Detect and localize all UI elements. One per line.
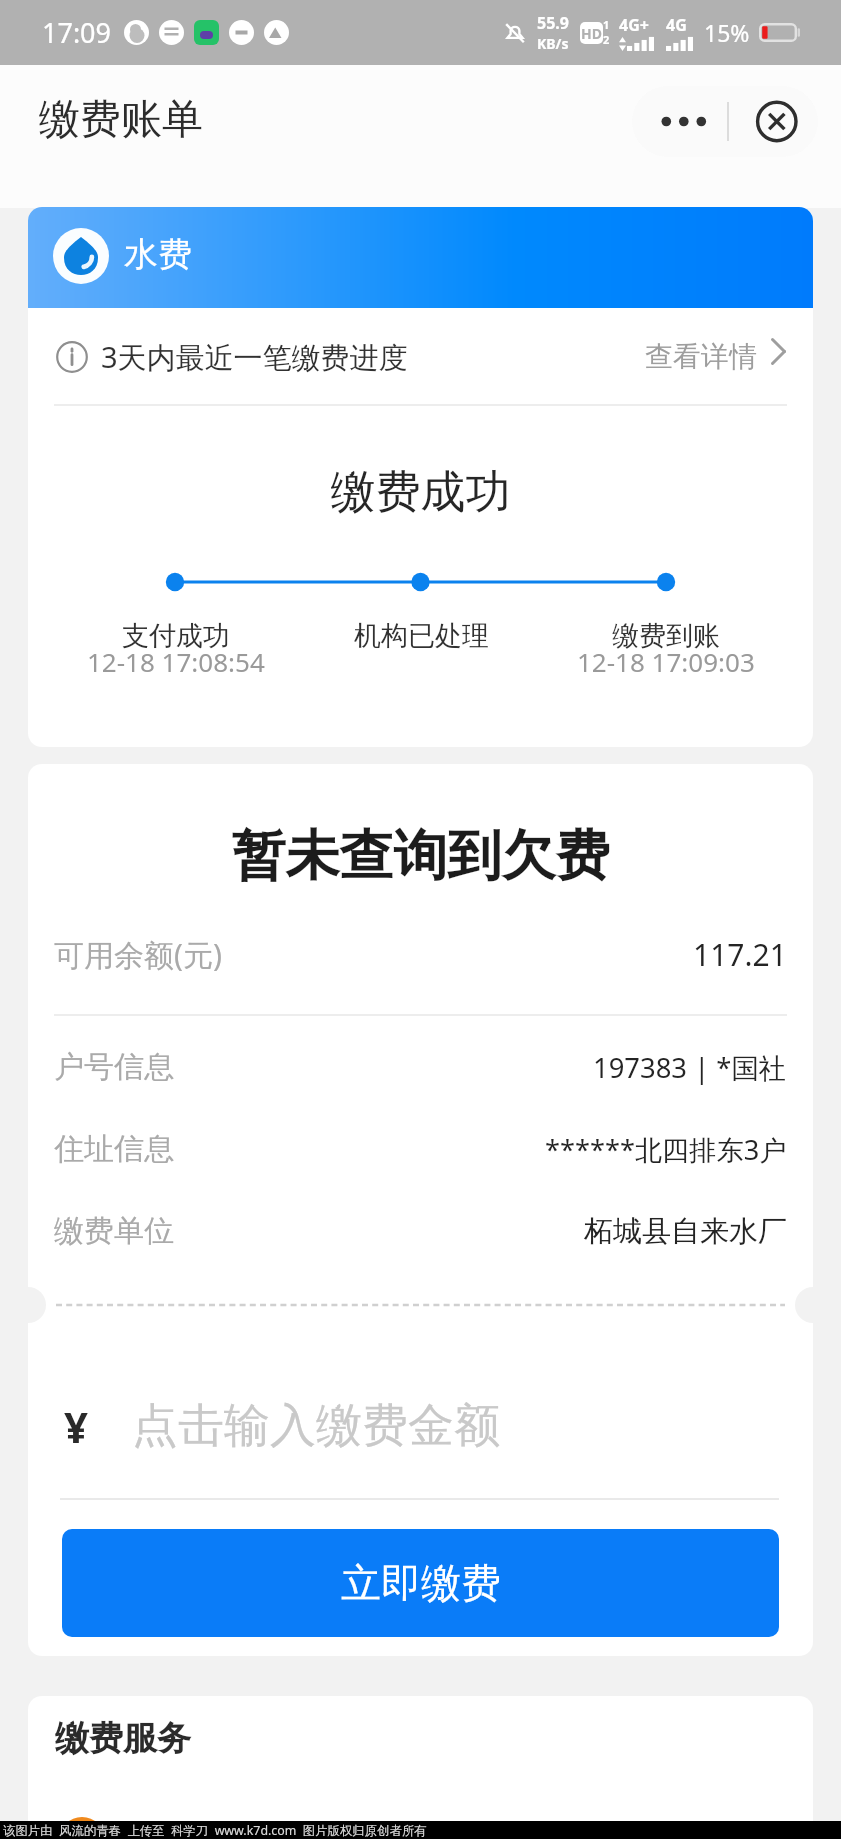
staticText: 点击输入缴费金额: [132, 1397, 500, 1455]
staticText: 缴费成功: [28, 464, 813, 521]
button[interactable]: More options: [632, 86, 818, 157]
staticText: 缴费到账: [612, 619, 720, 653]
staticText: 查看详情: [645, 339, 757, 374]
staticText: ******北四排东3户: [545, 1131, 787, 1168]
staticText: 197383 | *国社: [593, 1049, 787, 1086]
staticText: KB/s: [537, 34, 569, 53]
button[interactable]: ¥: [64, 1376, 779, 1476]
staticText: 4G+: [619, 14, 649, 36]
staticText: 17:09: [42, 14, 112, 51]
staticText: 12-18 17:09:03: [577, 644, 755, 679]
staticText: HD: [581, 24, 602, 43]
staticText: 暂未查询到欠费: [28, 822, 813, 890]
staticText: 3天内最近一笔缴费进度: [101, 337, 408, 377]
other: Close: [729, 86, 818, 157]
staticText: ¥: [64, 1398, 89, 1455]
staticText: 户号信息: [54, 1048, 174, 1086]
button[interactable]: 立即缴费: [62, 1529, 779, 1637]
staticText: 117.21: [693, 934, 787, 975]
staticText: 缴费账单: [39, 94, 203, 146]
staticText: 立即缴费: [341, 1558, 501, 1608]
staticText: 水费: [124, 233, 192, 276]
staticText: 15%: [704, 17, 750, 48]
staticText: 可用余额(元): [54, 934, 222, 975]
staticText: 柘城县自来水厂: [584, 1213, 787, 1250]
staticText: 55.9: [537, 12, 569, 34]
staticText: 1: [603, 17, 610, 32]
staticText: 缴费单位: [54, 1212, 174, 1250]
other: More options: [632, 86, 727, 157]
button[interactable]: 3天内最近一笔缴费进度: [56, 308, 786, 405]
staticText: 住址信息: [54, 1130, 174, 1168]
staticText: 12-18 17:08:54: [87, 644, 265, 679]
staticText: 2: [603, 32, 610, 47]
staticText: 支付成功: [122, 619, 230, 653]
staticText: 机构已处理: [354, 619, 489, 653]
staticText: 4G: [666, 14, 687, 36]
staticText: 该图片由 风流的青春 上传至 科学刀 www.k7d.com 图片版权归原创者所…: [3, 1822, 427, 1839]
staticText: 缴费服务: [55, 1717, 191, 1760]
